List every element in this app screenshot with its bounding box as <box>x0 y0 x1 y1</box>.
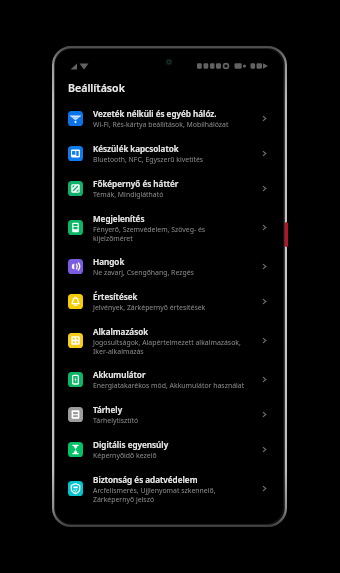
staticText: Alkalmazások <box>93 326 149 337</box>
staticText: Energiatakarékos mód, Akkumulátor haszná… <box>93 381 245 390</box>
staticText: Vezeték nélküli és egyéb hálóz. <box>93 108 217 119</box>
staticText: Értesítések <box>93 291 138 302</box>
staticText: Ne zavarj, Csengőhang, Rezgés <box>93 268 194 277</box>
button[interactable]: Alkalmazások <box>55 319 283 362</box>
button[interactable]: Készülék kapcsolatok <box>55 136 283 171</box>
button[interactable]: Hangok <box>55 249 283 284</box>
button[interactable]: Megjelenítés <box>55 206 283 249</box>
staticText: Készülék kapcsolatok <box>93 143 179 154</box>
staticText: Megjelenítés <box>93 213 145 224</box>
staticText: Biztonság és adatvédelem <box>93 474 198 485</box>
button[interactable]: Biztonság és adatvédelem <box>55 467 283 510</box>
staticText: Hangok <box>93 256 125 267</box>
staticText: Tárhelytisztító <box>93 416 139 425</box>
button[interactable]: Digitális egyensúly <box>55 432 283 467</box>
button[interactable]: Tárhely <box>55 397 283 432</box>
staticText: Digitális egyensúly <box>93 439 169 450</box>
button[interactable]: Vezeték nélküli és egyéb hálóz. <box>55 101 283 136</box>
staticText: Arcfelismerés, Ujjlenyomat szkennelő, Zá… <box>93 486 216 504</box>
staticText: Beállítások <box>68 81 125 95</box>
staticText: Főképernyő és háttér <box>93 178 179 189</box>
staticText: Témák, Mindiglátható <box>93 190 164 199</box>
staticText: Jelvények, Zárképernyő értesítések <box>93 303 206 312</box>
staticText: Bluetooth, NFC, Egyszerű kivetítés <box>93 155 204 164</box>
staticText: Akkumulátor <box>93 369 146 380</box>
button[interactable]: Főképernyő és háttér <box>55 171 283 206</box>
button[interactable]: Akkumulátor <box>55 362 283 397</box>
button[interactable]: Értesítések <box>55 284 283 319</box>
staticText: Tárhely <box>93 404 123 415</box>
staticText: Képernyőidő kezelő <box>93 451 157 460</box>
staticText: Fényerő, Szemvédelem, Szöveg- és kijelző… <box>93 225 206 243</box>
staticText: Jogosultságok, Alapértelmezett alkalmazá… <box>93 338 241 356</box>
staticText: Wi-Fi, Rés-kártya beállítások, Mobilháló… <box>93 120 229 129</box>
